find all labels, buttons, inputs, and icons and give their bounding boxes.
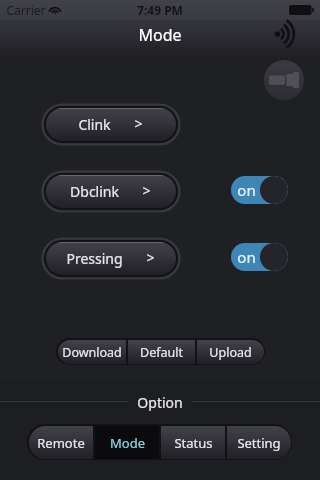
button[interactable]: Download [58,340,126,364]
staticText: on [237,180,256,200]
button[interactable]: Pressing [44,240,178,277]
button[interactable]: Default [128,340,195,364]
button[interactable]: Status [161,426,225,459]
button[interactable]: Setting [227,426,291,459]
staticText: Status [174,434,213,452]
button[interactable]: Sound [273,19,303,49]
staticText: Dbclink [70,182,119,201]
staticText: > [146,248,155,267]
button[interactable]: Horn [264,60,304,100]
button[interactable]: Dbclink [44,173,178,210]
staticText: Option [137,393,183,411]
staticText: Download [62,344,122,361]
button[interactable]: Toggle on [231,176,288,204]
staticText: Default [140,344,183,361]
staticText: Pressing [66,249,123,268]
button[interactable]: Upload [197,340,264,364]
staticText: 7:49 PM [137,2,183,18]
staticText: > [142,181,151,200]
staticText: Mode [138,24,182,46]
button[interactable]: Clink [44,106,178,143]
button[interactable]: Mode [95,426,159,459]
button[interactable]: Toggle on [231,243,288,271]
staticText: Setting [237,434,281,452]
staticText: on [237,247,256,267]
staticText: Upload [209,344,252,361]
button[interactable]: Remote [29,426,93,459]
staticText: Carrier [6,2,46,18]
staticText: > [134,114,143,133]
staticText: Clink [78,115,111,134]
staticText: Mode [110,434,145,452]
staticText: Remote [37,434,85,452]
